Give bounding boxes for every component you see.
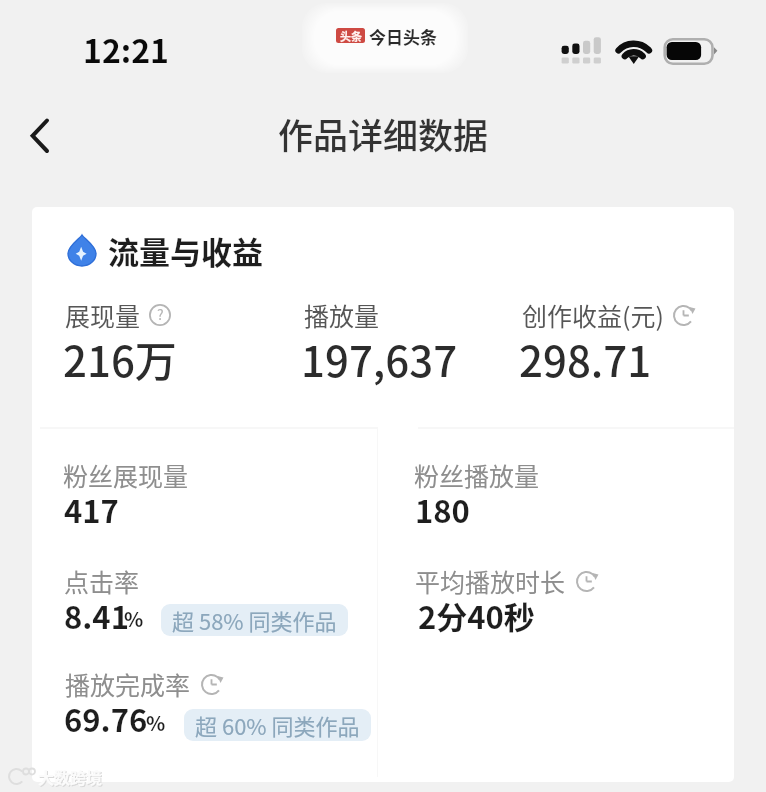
staticText: % [124,604,144,633]
staticText: % [146,708,166,737]
staticText: 8.41 [64,593,129,638]
staticText: 超 58% 同类作品 [172,604,337,636]
staticText: 展现量 [65,297,141,333]
staticText: 大数跨境 [38,765,103,788]
staticText: 180 [415,487,470,532]
button[interactable]: Back [6,104,72,170]
staticText: 大数跨境 [39,766,104,789]
staticText: 粉丝播放量 [414,457,540,493]
staticText: 197,637 [301,328,458,389]
staticText: 69.76 [64,696,148,741]
staticText: 平均播放时长 [415,563,566,599]
staticText: 今日头条 [369,24,437,49]
staticText: 2分40秒 [418,593,535,638]
staticText: 流量与收益 [108,228,263,273]
staticText: 播放完成率 [65,666,191,702]
staticText: ? [157,304,164,324]
staticText: 点击率 [64,563,140,599]
staticText: 播放量 [304,297,380,333]
staticText: 头条 [340,28,362,43]
staticText: 12:21 [83,26,169,72]
staticText: 298.71 [519,328,652,389]
staticText: 216万 [63,328,177,389]
staticText: 粉丝展现量 [63,457,189,493]
staticText: 创作收益(元) [522,297,664,333]
staticText: 417 [64,487,119,532]
staticText: 作品详细数据 [278,108,489,159]
staticText: 超 60% 同类作品 [195,709,360,741]
